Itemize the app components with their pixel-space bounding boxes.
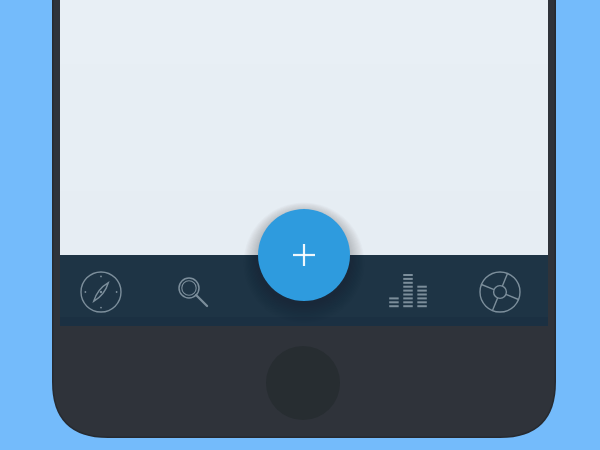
- button[interactable]: Search: [152, 255, 244, 326]
- button[interactable]: Add: [258, 209, 350, 301]
- button[interactable]: Explore: [60, 255, 152, 326]
- button[interactable]: Statistics: [362, 255, 454, 326]
- button[interactable]: Home: [266, 346, 340, 420]
- button[interactable]: Reports: [454, 255, 548, 326]
